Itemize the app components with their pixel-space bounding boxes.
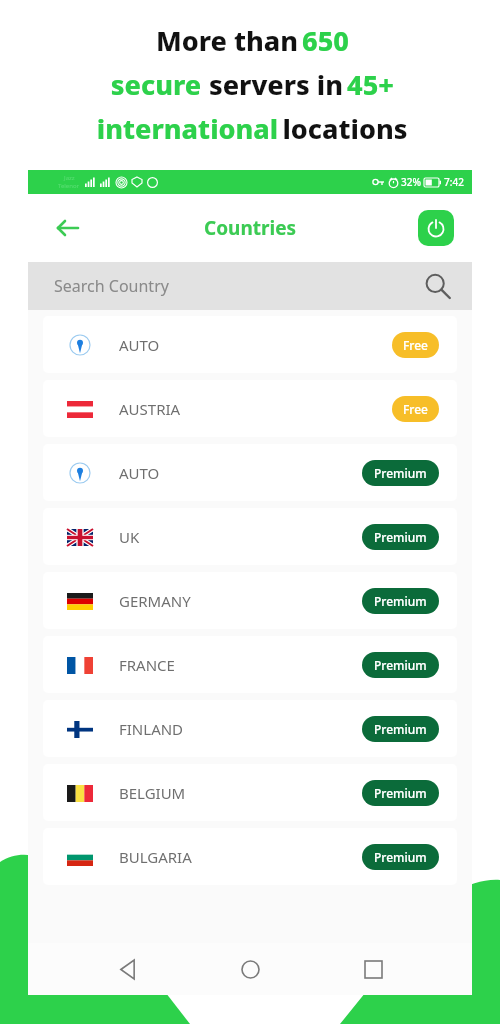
staticText: 45+ (347, 66, 394, 103)
staticText: UK (119, 527, 140, 547)
staticText: AUTO (119, 335, 160, 355)
staticText: Premium (374, 785, 427, 801)
staticText: AUTO (119, 463, 160, 483)
button[interactable]: Premium (362, 844, 439, 870)
staticText: BELGIUM (119, 783, 186, 803)
staticText: GERMANY (119, 591, 191, 611)
button[interactable]: Premium (362, 460, 439, 486)
staticText: AUSTRIA (119, 399, 181, 419)
button[interactable]: Power (418, 210, 454, 246)
staticText: international (93, 110, 282, 147)
staticText: BULGARIA (119, 847, 192, 867)
button[interactable]: Back (48, 208, 88, 248)
staticText: Free (403, 337, 428, 353)
button[interactable]: AUTO (43, 444, 457, 501)
button[interactable]: Home (226, 945, 274, 993)
staticText: FINLAND (119, 719, 184, 739)
staticText: 7:42 (444, 175, 464, 189)
button[interactable]: FINLAND (43, 700, 457, 757)
button[interactable]: Back (103, 945, 151, 993)
button[interactable]: FRANCE (43, 636, 457, 693)
button[interactable]: Premium (362, 780, 439, 806)
staticText: Countries (204, 215, 297, 241)
staticText: Premium (374, 721, 427, 737)
staticText: Search Country (54, 275, 169, 297)
staticText: More than (152, 22, 302, 59)
button[interactable]: Free (392, 332, 439, 358)
button[interactable]: Recents (349, 945, 397, 993)
button[interactable]: GERMANY (43, 572, 457, 629)
staticText: secure (107, 66, 205, 103)
staticText: Premium (374, 657, 427, 673)
staticText: Free (403, 401, 428, 417)
button[interactable]: Premium (362, 588, 439, 614)
staticText: 650 (302, 22, 349, 59)
staticText: Telenor (58, 182, 80, 190)
staticText: 32% (401, 175, 421, 189)
staticText: Premium (374, 593, 427, 609)
button[interactable]: BULGARIA (43, 828, 457, 885)
staticText: Premium (374, 465, 427, 481)
button[interactable]: Premium (362, 652, 439, 678)
button[interactable]: Premium (362, 524, 439, 550)
button[interactable]: UK (43, 508, 457, 565)
button[interactable]: Free (392, 396, 439, 422)
button[interactable]: Premium (362, 716, 439, 742)
staticText: locations (282, 110, 408, 147)
staticText: Premium (374, 849, 427, 865)
button[interactable]: BELGIUM (43, 764, 457, 821)
staticText: FRANCE (119, 655, 175, 675)
staticText: Jazz (64, 174, 75, 182)
staticText: Premium (374, 529, 427, 545)
staticText: servers in (205, 66, 347, 103)
button[interactable]: AUTO (43, 316, 457, 373)
button[interactable]: Search Country (28, 262, 472, 310)
button[interactable]: AUSTRIA (43, 380, 457, 437)
